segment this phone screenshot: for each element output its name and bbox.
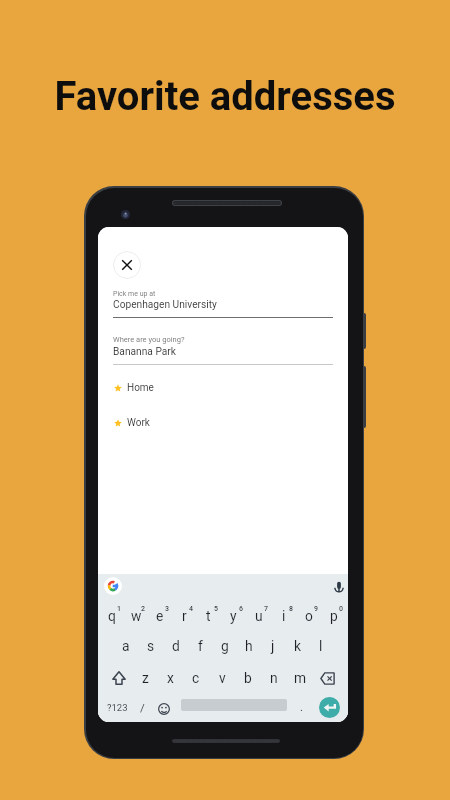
button[interactable]: Google	[104, 577, 122, 595]
staticText: /	[140, 701, 145, 714]
staticText: w	[131, 608, 142, 624]
button[interactable]: q	[100, 601, 124, 631]
staticText: n	[270, 670, 278, 686]
staticText: t	[206, 608, 211, 624]
staticText: o	[305, 608, 313, 624]
staticText: k	[294, 638, 301, 654]
staticText: 9	[314, 605, 318, 613]
button[interactable]: z	[133, 663, 158, 693]
button[interactable]: m	[287, 663, 313, 693]
staticText: 5	[214, 605, 218, 613]
button[interactable]: n	[261, 663, 287, 693]
staticText: g	[221, 638, 229, 654]
button[interactable]: Where are you going?	[113, 334, 333, 345]
button[interactable]: x	[158, 663, 183, 693]
button[interactable]: h	[237, 631, 261, 661]
staticText: 0	[339, 605, 343, 613]
staticText: p	[330, 608, 338, 624]
button[interactable]: Shift	[103, 663, 135, 693]
button[interactable]: Bananna Park	[113, 344, 333, 360]
button[interactable]: p	[321, 601, 346, 631]
button[interactable]: Pick me up at	[113, 288, 333, 299]
staticText: b	[244, 670, 252, 686]
staticText: m	[294, 670, 307, 686]
staticText: 7	[264, 605, 268, 613]
staticText: j	[271, 638, 275, 654]
button[interactable]: Copenhagen University	[113, 297, 333, 313]
staticText: q	[108, 608, 116, 624]
button[interactable]: Close	[113, 251, 141, 279]
staticText: c	[192, 670, 200, 686]
button[interactable]: e	[148, 601, 172, 631]
button[interactable]: Home	[114, 379, 348, 397]
button[interactable]: v	[209, 663, 235, 693]
staticText: 8	[289, 605, 293, 613]
button[interactable]: k	[285, 631, 309, 661]
staticText: e	[156, 608, 164, 624]
staticText: 1	[117, 605, 121, 613]
button[interactable]: Work	[114, 414, 348, 432]
staticText: .	[300, 700, 304, 713]
button[interactable]: w	[124, 601, 148, 631]
staticText: Work	[127, 417, 150, 429]
staticText: Pick me up at	[113, 290, 156, 298]
button[interactable]: d	[163, 631, 188, 661]
button[interactable]: /	[133, 692, 152, 722]
staticText: f	[198, 638, 203, 654]
button[interactable]: ?123	[100, 692, 134, 722]
button[interactable]: l	[309, 631, 333, 661]
button[interactable]: j	[261, 631, 285, 661]
staticText: Copenhagen University	[113, 299, 217, 311]
staticText: z	[142, 670, 149, 686]
staticText: Where are you going?	[113, 335, 185, 344]
staticText: 2	[141, 605, 145, 613]
staticText: 6	[239, 605, 243, 613]
staticText: x	[167, 670, 174, 686]
staticText: u	[255, 608, 263, 624]
button[interactable]: Emoji	[153, 694, 174, 722]
staticText: s	[147, 638, 155, 654]
button[interactable]: c	[183, 663, 209, 693]
button[interactable]: Enter	[319, 697, 340, 718]
button[interactable]: g	[213, 631, 237, 661]
staticText: h	[245, 638, 253, 654]
staticText: r	[182, 608, 187, 624]
staticText: 3	[165, 605, 169, 613]
button[interactable]: Backspace	[313, 663, 341, 693]
button[interactable]: o	[296, 601, 321, 631]
staticText: Home	[127, 382, 154, 394]
button[interactable]: u	[246, 601, 271, 631]
button[interactable]: .	[292, 691, 311, 721]
staticText: a	[122, 638, 130, 654]
button[interactable]: a	[113, 631, 138, 661]
button[interactable]: t	[196, 601, 221, 631]
button[interactable]: Voice input	[332, 579, 346, 595]
staticText: d	[172, 638, 180, 654]
button[interactable]: r	[172, 601, 196, 631]
staticText: l	[319, 638, 323, 654]
button[interactable]: s	[138, 631, 163, 661]
button[interactable]: f	[188, 631, 213, 661]
staticText: Favorite addresses	[0, 73, 450, 120]
button[interactable]: b	[235, 663, 261, 693]
staticText: 4	[189, 605, 193, 613]
staticText: v	[219, 670, 226, 686]
button[interactable]: y	[221, 601, 246, 631]
staticText: ?123	[107, 702, 128, 713]
staticText: i	[282, 608, 286, 624]
staticText: y	[230, 608, 237, 624]
staticText: Bananna Park	[113, 346, 176, 358]
button[interactable]: i	[271, 601, 296, 631]
